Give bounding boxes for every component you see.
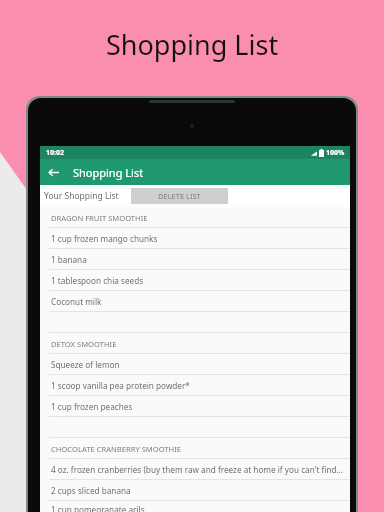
staticText: DELETE LIST xyxy=(158,191,201,201)
staticText: 1 cup frozen peaches xyxy=(51,401,133,412)
staticText: Shopping List xyxy=(106,26,279,63)
staticText: Coconut milk xyxy=(51,296,102,307)
button[interactable]: Coconut milk xyxy=(40,291,350,312)
staticText: 1 tablespoon chia seeds xyxy=(51,275,144,286)
button[interactable]: 1 cup frozen peaches xyxy=(40,396,350,417)
staticText: 2 cups sliced banana xyxy=(51,485,131,496)
staticText: 1 scoop vanilla pea protein powder* xyxy=(51,380,190,391)
button[interactable]: 2 cups sliced banana xyxy=(40,480,350,501)
staticText: 1 cup pomegranate arils xyxy=(51,504,145,512)
button[interactable]: 1 banana xyxy=(40,249,350,270)
staticText: 1 cup frozen mango chunks xyxy=(51,233,158,244)
staticText: DRAGON FRUIT SMOOTHIE xyxy=(51,213,148,223)
staticText: Squeeze of lemon xyxy=(51,359,120,370)
button[interactable]: 1 cup pomegranate arils xyxy=(40,501,350,512)
staticText: Shopping List xyxy=(73,165,144,180)
staticText: Your Shopping List xyxy=(44,190,119,202)
button[interactable]: Back xyxy=(40,159,66,185)
button[interactable]: CHOCOLATE CRANBERRY SMOOTHIE xyxy=(40,438,350,459)
button[interactable] xyxy=(40,312,350,333)
button[interactable]: 1 cup frozen mango chunks xyxy=(40,228,350,249)
staticText: DETOX SMOOTHIE xyxy=(51,339,117,349)
staticText: CHOCOLATE CRANBERRY SMOOTHIE xyxy=(51,444,182,454)
button[interactable]: Squeeze of lemon xyxy=(40,354,350,375)
button[interactable]: DELETE LIST xyxy=(131,188,228,204)
button[interactable]: 4 oz. frozen cranberries (buy them raw a… xyxy=(40,459,350,480)
button[interactable] xyxy=(40,417,350,438)
staticText: 4 oz. frozen cranberries (buy them raw a… xyxy=(51,464,344,475)
button[interactable]: DRAGON FRUIT SMOOTHIE xyxy=(40,207,350,228)
staticText: 1 banana xyxy=(51,254,87,265)
staticText: 100% xyxy=(326,148,345,158)
staticText: 10:02 xyxy=(46,148,64,158)
button[interactable]: DETOX SMOOTHIE xyxy=(40,333,350,354)
button[interactable]: 1 tablespoon chia seeds xyxy=(40,270,350,291)
button[interactable]: 1 scoop vanilla pea protein powder* xyxy=(40,375,350,396)
